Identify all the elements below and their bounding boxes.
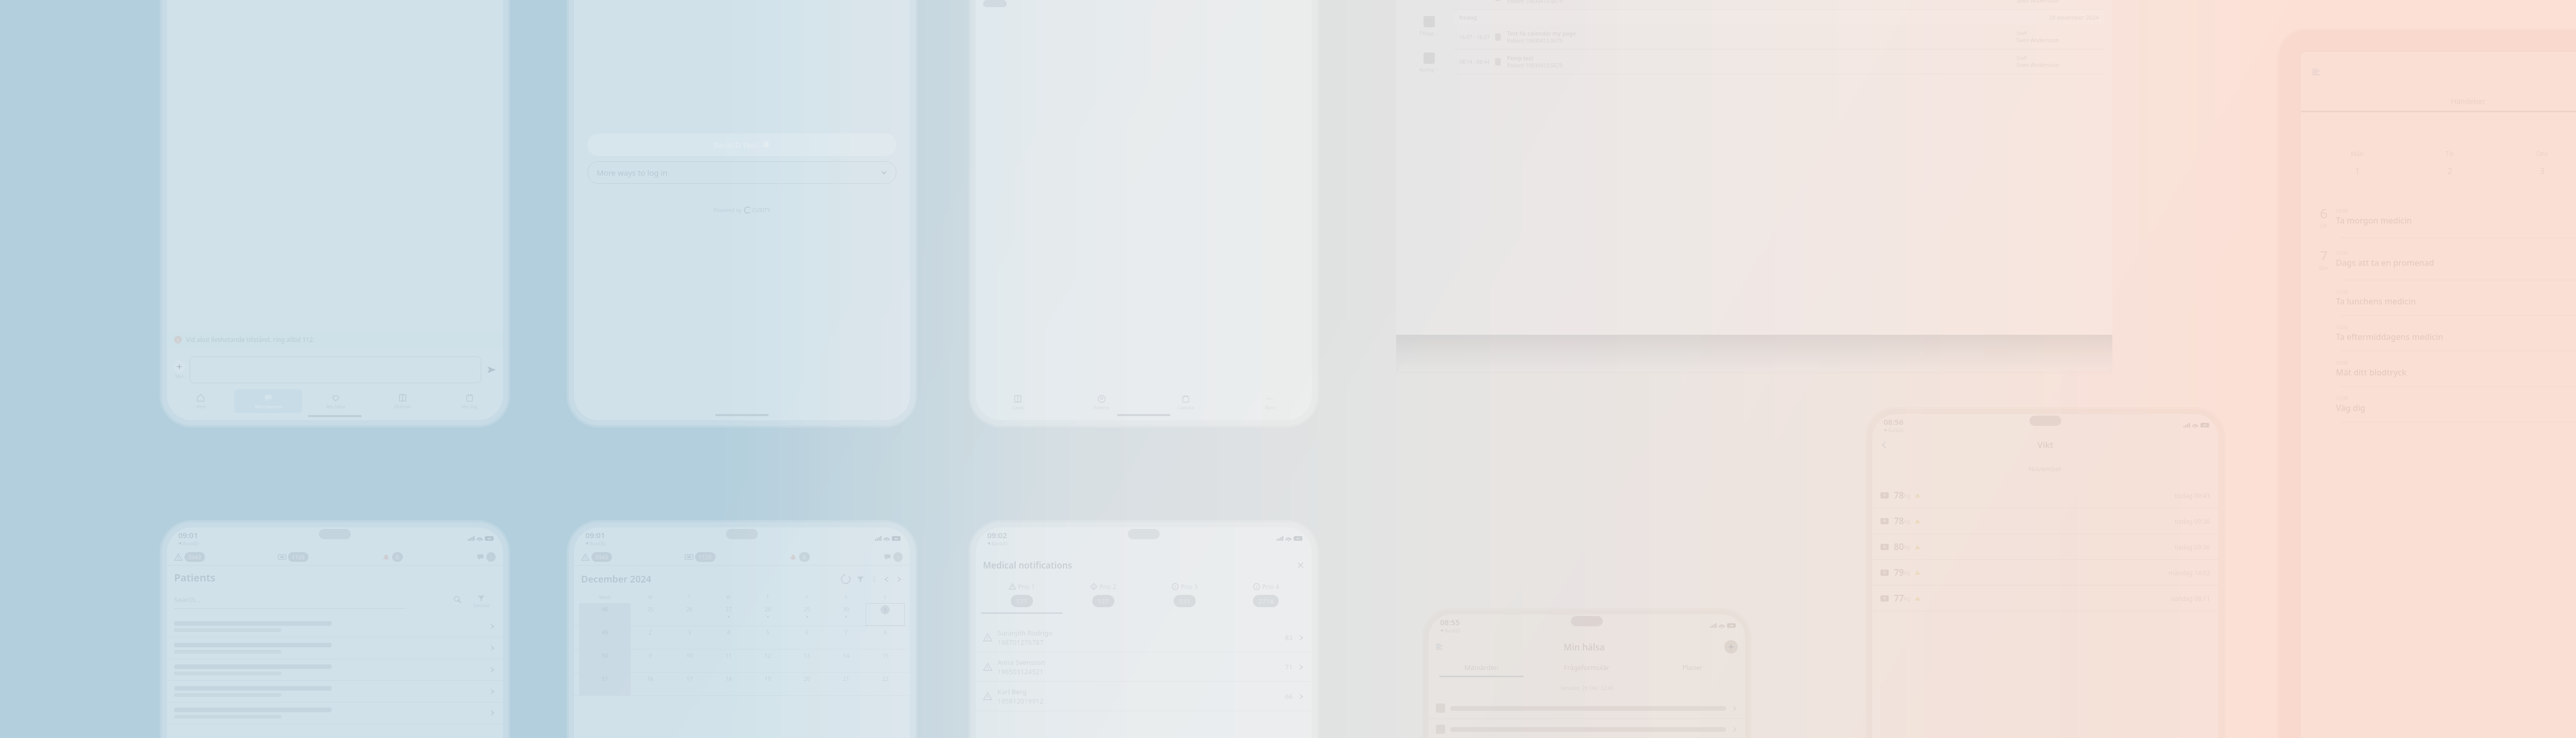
staticText: tisdag 09:36 [2175, 517, 2210, 525]
button[interactable]: Händelser [2301, 96, 2576, 112]
button[interactable] [167, 702, 503, 724]
button[interactable]: Meny [2312, 67, 2321, 77]
staticText: 19:00 [2336, 359, 2348, 366]
button[interactable]: Meny [1436, 643, 1444, 651]
button[interactable]: Föregående [883, 576, 890, 583]
staticText: Händelser [2451, 96, 2486, 106]
button[interactable]: Frågeformulär [1534, 663, 1639, 677]
button[interactable]: 1 [866, 603, 905, 626]
button[interactable] [1429, 698, 1745, 718]
button[interactable] [167, 616, 503, 637]
button[interactable]: Cases [976, 390, 1060, 414]
button[interactable]: Nästa [895, 576, 903, 583]
staticText: fredag [1459, 13, 2049, 21]
button[interactable]: 08:14 - 08:44 [1454, 49, 2104, 74]
button[interactable]: Prio 4 [1225, 582, 1307, 607]
button[interactable]: Konfig ⌃ [1404, 44, 1454, 81]
button[interactable]: Mätvärden [1429, 663, 1534, 677]
button[interactable]: More ways to log in [587, 161, 896, 184]
button[interactable]: Mer [871, 576, 878, 583]
button[interactable]: Anna Svensson [976, 653, 1312, 681]
button[interactable] [167, 681, 503, 702]
button[interactable]: 16:07 - 16:37 [1454, 0, 2104, 9]
button[interactable]: BankID Test [587, 133, 896, 156]
button[interactable]: Stäng [1297, 561, 1304, 569]
button[interactable]: 16:07 - 16:37 [1454, 25, 2104, 49]
button[interactable]: Tillbaka [1879, 440, 1889, 450]
button[interactable]: Prio 2 [1062, 582, 1144, 607]
button[interactable]: Detailed search [467, 594, 496, 608]
button[interactable] [167, 659, 503, 680]
button[interactable]: Lägg till [1724, 640, 1738, 654]
button[interactable]: Prio 1 [981, 582, 1062, 607]
button[interactable]: Tillägg ⌄ [1404, 8, 1454, 44]
button[interactable] [167, 638, 503, 659]
button[interactable]: Uppdatera [841, 575, 850, 583]
button[interactable] [1429, 719, 1745, 738]
button[interactable]: Karl Berg [976, 682, 1312, 711]
button[interactable]: Meddelanden [234, 389, 302, 413]
button[interactable]: Suranjith Rodrigo [976, 623, 1312, 652]
button[interactable]: Prio 3 [1144, 582, 1225, 607]
button[interactable]: Mer [172, 359, 187, 380]
button[interactable]: Skicka [485, 364, 498, 376]
button[interactable]: Filter [856, 575, 865, 583]
